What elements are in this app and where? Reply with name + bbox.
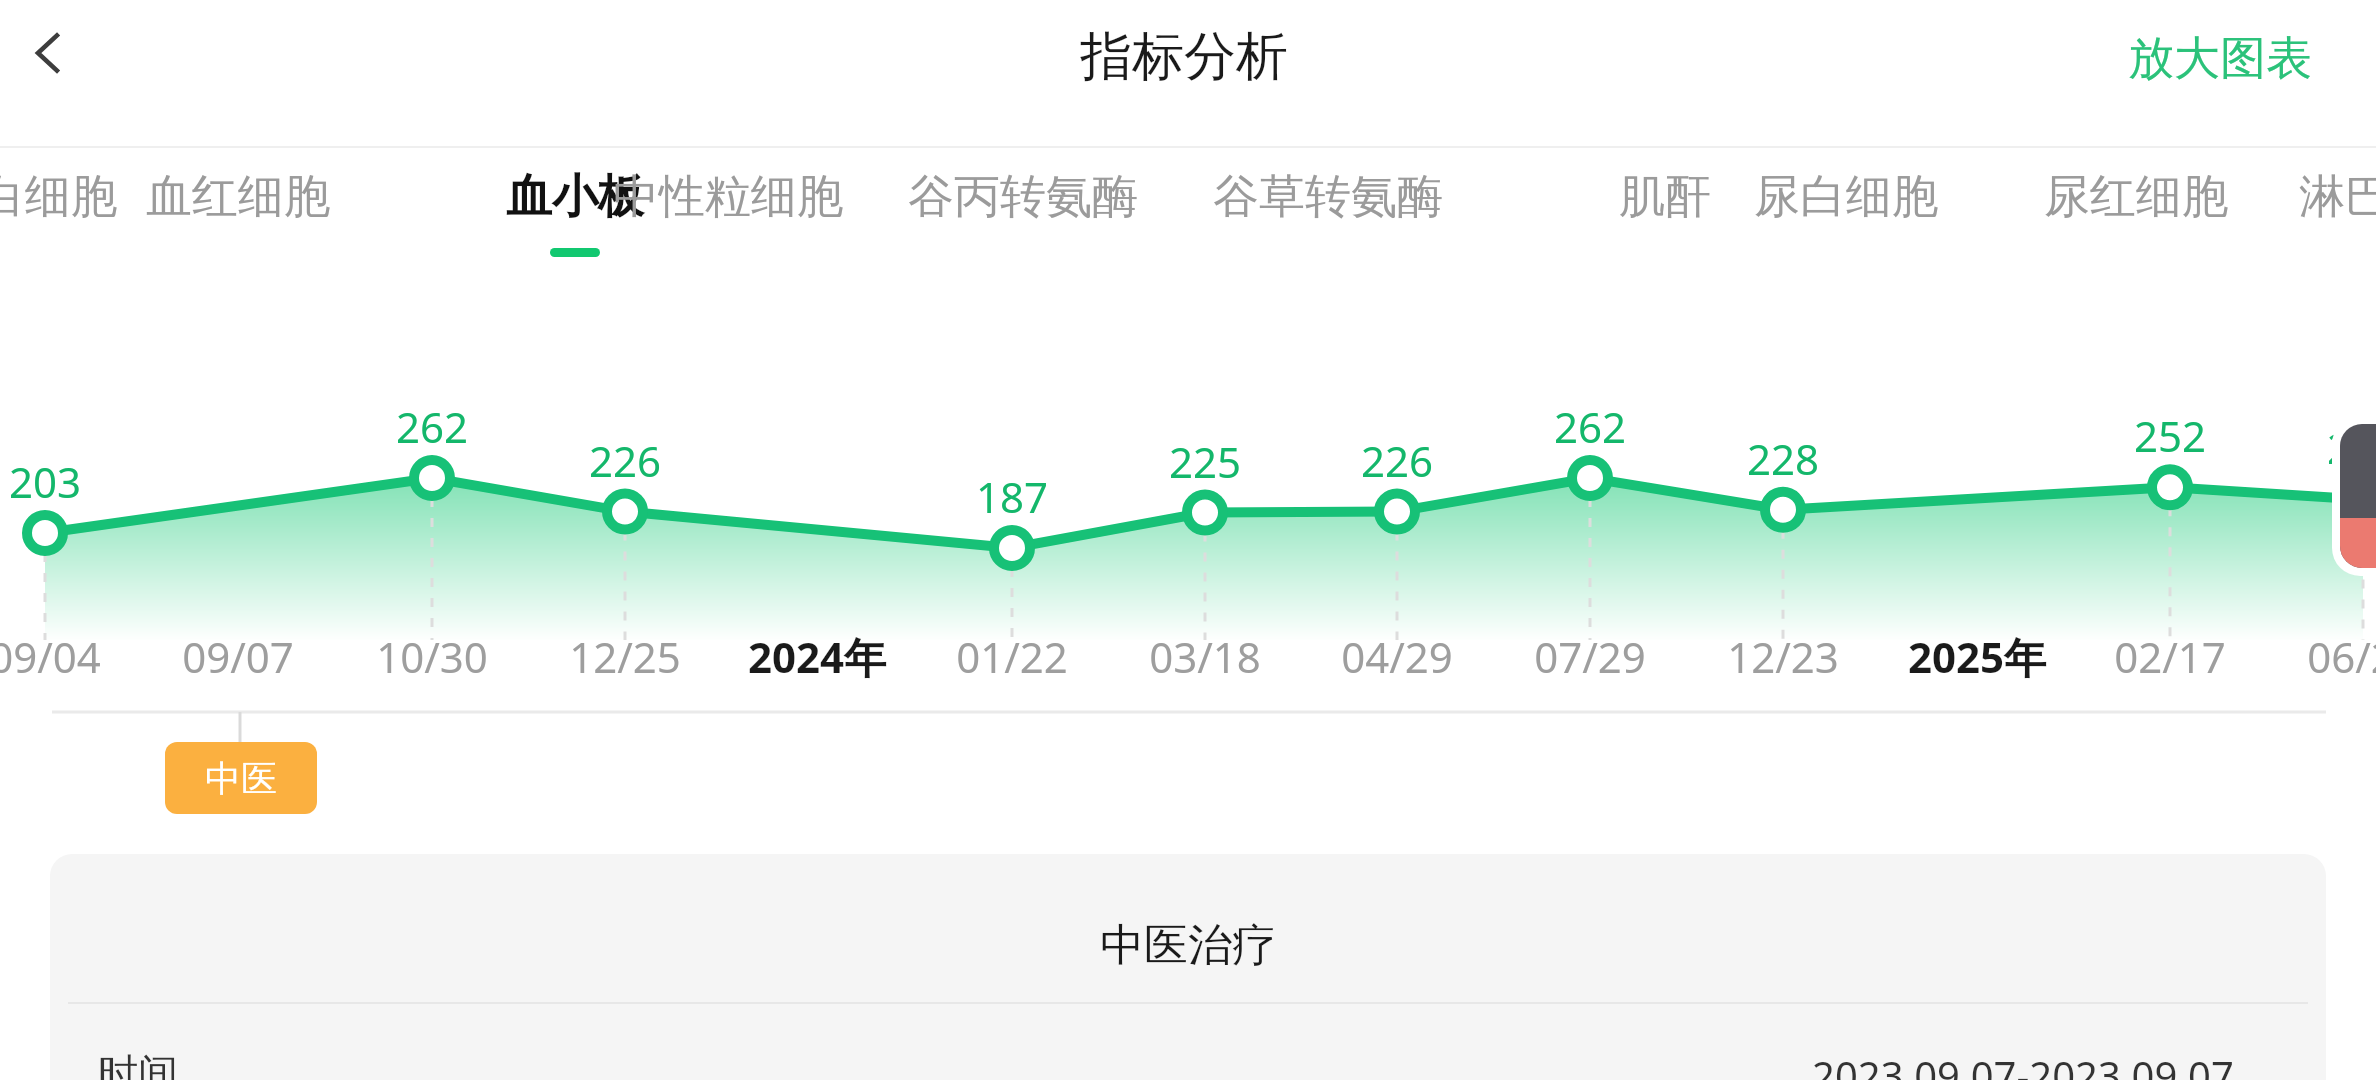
staticText: 239 xyxy=(2308,419,2376,476)
button[interactable]: 血小板 xyxy=(487,168,663,292)
staticText: 09/07 xyxy=(128,628,348,685)
button[interactable]: 中医治疗 xyxy=(50,854,2326,1080)
staticText: 谷丙转氨酶 xyxy=(908,168,1138,226)
staticText: 252 xyxy=(2115,407,2225,464)
staticText: 中性粒细胞 xyxy=(613,168,843,226)
staticText: 228 xyxy=(1728,430,1838,487)
staticText: 225 xyxy=(1150,433,1260,490)
button[interactable]: 放大图表 xyxy=(2108,8,2332,110)
staticText: 2023.09.07-2023.09.07 xyxy=(1812,1048,2234,1080)
staticText: 血小板 xyxy=(506,168,644,226)
staticText: 放大图表 xyxy=(2128,30,2312,88)
staticText: 12/23 xyxy=(1673,628,1893,685)
button[interactable]: 谷草转氨酶 xyxy=(1192,168,1464,292)
staticText: 中医治疗 xyxy=(1100,918,1276,973)
staticText: 中医 xyxy=(205,756,277,801)
button[interactable]: Back xyxy=(8,12,90,94)
staticText: 226 xyxy=(1342,432,1452,489)
staticText: 2025年 xyxy=(1867,628,2087,685)
staticText: 04/29 xyxy=(1287,628,1507,685)
staticText: 226 xyxy=(570,432,680,489)
button[interactable]: 中性粒细胞 xyxy=(592,168,864,292)
staticText: 09/04 xyxy=(0,628,155,685)
staticText: 时间 xyxy=(98,1048,178,1080)
button[interactable]: 肌酐 xyxy=(1601,168,1729,292)
staticText: 血红细胞 xyxy=(146,168,330,226)
staticText: 白细胞 xyxy=(0,168,117,226)
staticText: 肌酐 xyxy=(1619,168,1711,226)
button[interactable]: Floating video window xyxy=(2332,416,2376,576)
staticText: 187 xyxy=(957,468,1067,525)
staticText: 10/30 xyxy=(322,628,542,685)
button[interactable]: 谷丙转氨酶 xyxy=(887,168,1159,292)
staticText: 262 xyxy=(377,398,487,455)
staticText: 07/29 xyxy=(1480,628,1700,685)
staticText: 03/18 xyxy=(1095,628,1315,685)
staticText: 203 xyxy=(0,453,100,510)
button[interactable]: 中医 xyxy=(165,742,317,814)
staticText: 01/22 xyxy=(902,628,1122,685)
staticText: 262 xyxy=(1535,398,1645,455)
staticText: 尿红细胞 xyxy=(2044,168,2228,226)
button[interactable]: 白细胞 xyxy=(0,168,136,292)
staticText: 02/17 xyxy=(2060,628,2280,685)
staticText: 12/25 xyxy=(515,628,735,685)
button[interactable]: 淋巴 xyxy=(2281,168,2376,292)
staticText: 指标分析 xyxy=(1080,24,1288,90)
button[interactable]: 血红细胞 xyxy=(126,168,350,292)
staticText: 2024年 xyxy=(707,628,927,685)
button[interactable]: 尿白细胞 xyxy=(1734,168,1958,292)
staticText: 尿白细胞 xyxy=(1754,168,1938,226)
staticText: 06/25 xyxy=(2253,628,2376,685)
staticText: 谷草转氨酶 xyxy=(1213,168,1443,226)
staticText: 淋巴 xyxy=(2299,168,2376,226)
button[interactable]: 尿红细胞 xyxy=(2024,168,2248,292)
